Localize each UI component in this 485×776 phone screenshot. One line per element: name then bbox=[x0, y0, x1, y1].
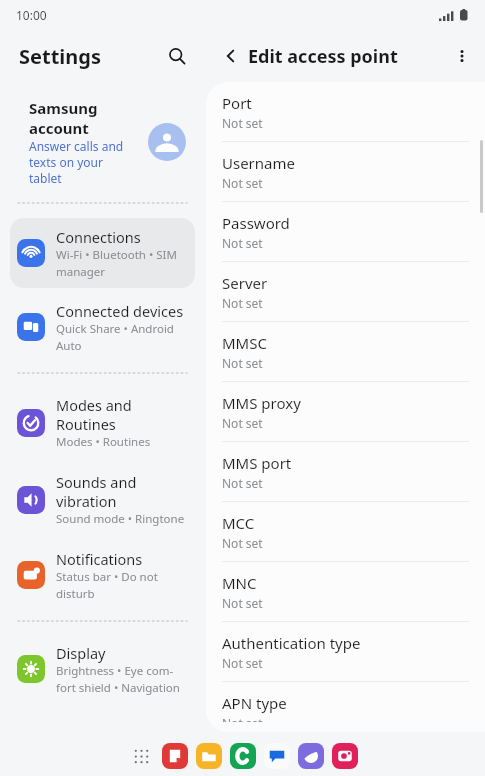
button[interactable]: Server bbox=[206, 262, 485, 322]
staticText: Connected devices bbox=[56, 301, 184, 321]
staticText: Not set bbox=[222, 655, 263, 671]
button[interactable]: Modes and Routines bbox=[10, 386, 195, 459]
button[interactable]: Authentication type bbox=[206, 622, 485, 682]
button[interactable]: Samsung Notes bbox=[160, 741, 190, 771]
staticText: Not set bbox=[222, 415, 263, 431]
staticText: MMS port bbox=[222, 453, 292, 473]
button[interactable]: All apps bbox=[126, 741, 156, 771]
staticText: Server bbox=[222, 273, 268, 293]
button[interactable]: Port bbox=[206, 82, 485, 142]
staticText: Not set bbox=[222, 295, 263, 311]
button[interactable]: MMSC bbox=[206, 322, 485, 382]
staticText: Not set bbox=[222, 175, 263, 191]
button[interactable]: APN type bbox=[206, 682, 485, 732]
staticText: Not set bbox=[222, 115, 263, 131]
staticText: Port bbox=[222, 93, 252, 113]
button[interactable]: Username bbox=[206, 142, 485, 202]
button[interactable]: Search bbox=[161, 40, 193, 72]
button[interactable]: Messages bbox=[262, 741, 292, 771]
button[interactable]: Connected devices bbox=[10, 292, 195, 362]
staticText: MMSC bbox=[222, 333, 267, 353]
staticText: Settings bbox=[19, 43, 101, 70]
button[interactable]: Phone bbox=[228, 741, 258, 771]
staticText: Edit access point bbox=[248, 44, 398, 69]
staticText: Display bbox=[56, 643, 106, 663]
staticText: Modes and Routines bbox=[56, 395, 132, 434]
button[interactable]: MCC bbox=[206, 502, 485, 562]
staticText: MCC bbox=[222, 513, 255, 533]
staticText: Notifications bbox=[56, 549, 143, 569]
button[interactable]: My Files bbox=[194, 741, 224, 771]
staticText: Sound mode • Ringtone bbox=[56, 511, 185, 527]
button[interactable]: Connections bbox=[10, 218, 195, 288]
staticText: Answer calls and texts on your tablet bbox=[29, 138, 124, 186]
staticText: Authentication type bbox=[222, 633, 361, 653]
button[interactable]: Back bbox=[215, 40, 247, 72]
staticText: Username bbox=[222, 153, 295, 173]
button[interactable]: MMS port bbox=[206, 442, 485, 502]
staticText: Password bbox=[222, 213, 290, 233]
staticText: Not set bbox=[222, 475, 263, 491]
button[interactable]: MMS proxy bbox=[206, 382, 485, 442]
staticText: Brightness • Eye com- fort shield • Navi… bbox=[56, 663, 180, 695]
button[interactable]: Notifications bbox=[10, 540, 195, 610]
button[interactable]: Password bbox=[206, 202, 485, 262]
staticText: MNC bbox=[222, 573, 257, 593]
staticText: Wi-Fi • Bluetooth • SIM manager bbox=[56, 247, 177, 279]
button[interactable]: Samsung account bbox=[10, 96, 195, 192]
staticText: Not set bbox=[222, 235, 263, 251]
staticText: Not set bbox=[222, 595, 263, 611]
button[interactable]: Display bbox=[10, 634, 195, 704]
staticText: Sounds and vibration bbox=[56, 472, 137, 511]
staticText: Connections bbox=[56, 227, 141, 247]
staticText: Not set bbox=[222, 355, 263, 371]
staticText: Modes • Routines bbox=[56, 434, 151, 450]
button[interactable]: Sounds and vibration bbox=[10, 463, 195, 536]
staticText: APN type bbox=[222, 693, 287, 713]
button[interactable]: MNC bbox=[206, 562, 485, 622]
staticText: Samsung account bbox=[29, 98, 98, 138]
staticText: Not set bbox=[222, 535, 263, 551]
staticText: Quick Share • Android Auto bbox=[56, 321, 174, 353]
staticText: MMS proxy bbox=[222, 393, 301, 413]
button[interactable]: Internet bbox=[296, 741, 326, 771]
staticText: 10:00 bbox=[16, 7, 47, 23]
staticText: Not set bbox=[222, 715, 263, 722]
button[interactable]: Camera bbox=[330, 741, 360, 771]
staticText: Status bar • Do not disturb bbox=[56, 569, 158, 601]
button[interactable]: More options bbox=[446, 40, 478, 72]
